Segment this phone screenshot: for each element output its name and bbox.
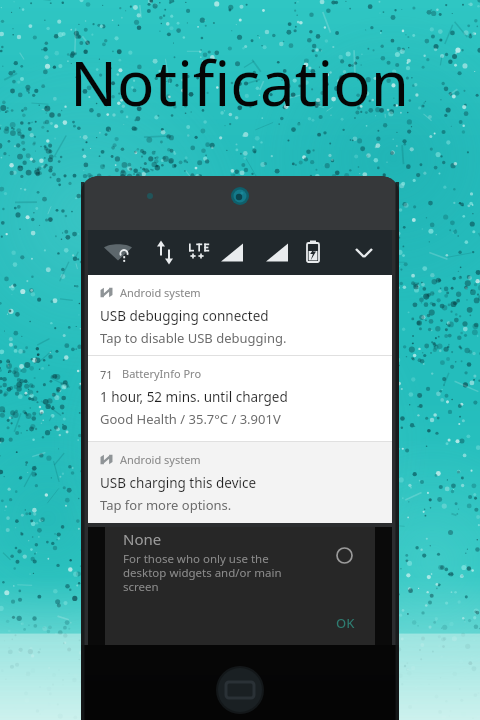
staticText: None bbox=[123, 529, 162, 549]
staticText: Notification bbox=[70, 40, 410, 124]
button[interactable]: OK bbox=[326, 609, 365, 637]
staticText: OK bbox=[336, 614, 355, 632]
button[interactable]: 71 bbox=[88, 356, 392, 441]
staticText: Good Health / 35.7°C / 3.901V bbox=[100, 410, 281, 428]
staticText: USB debugging connected bbox=[100, 307, 269, 325]
button[interactable]: Android system bbox=[88, 442, 392, 523]
staticText: Tap to disable USB debugging. bbox=[100, 329, 287, 347]
staticText: Android system bbox=[120, 452, 201, 467]
button[interactable]: Collapse quick settings bbox=[344, 230, 384, 275]
staticText: USB charging this device bbox=[100, 474, 257, 492]
button[interactable]: Android system bbox=[88, 275, 392, 355]
staticText: For those who only use the desktop widge… bbox=[123, 551, 282, 594]
staticText: 1 hour, 52 mins. until charged bbox=[100, 388, 288, 406]
staticText: BatteryInfo Pro bbox=[122, 366, 202, 381]
button[interactable]: Select None bbox=[327, 538, 361, 572]
staticText: 71 bbox=[100, 367, 113, 380]
staticText: Android system bbox=[120, 285, 201, 300]
staticText: Tap for more options. bbox=[100, 496, 232, 514]
